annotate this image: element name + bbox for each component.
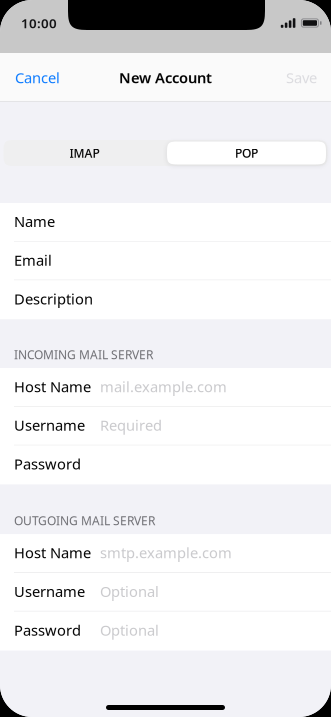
staticText: New Account [119,68,212,87]
staticText: Password [14,620,81,640]
button[interactable]: Password [0,612,331,650]
staticText: OUTGOING MAIL SERVER [14,513,155,529]
button[interactable]: Host Name [0,368,331,407]
staticText: smtp.example.com [100,543,232,562]
staticText: Description [14,289,93,308]
staticText: Host Name [14,377,91,396]
staticText: IMAP [69,145,99,161]
button[interactable]: Username [0,407,331,445]
button[interactable]: Host Name [0,534,331,573]
staticText: INCOMING MAIL SERVER [14,347,153,362]
button[interactable]: Cancel [0,55,72,99]
staticText: mail.example.com [100,377,227,396]
staticText: Optional [100,581,159,601]
staticText: Optional [100,620,159,640]
button[interactable]: Username [0,573,331,612]
staticText: POP [235,145,258,161]
staticText: Password [14,454,81,474]
button[interactable]: Save [274,55,331,99]
button[interactable]: POP [165,140,327,166]
button[interactable]: Description [0,280,331,319]
staticText: Username [14,415,85,435]
button[interactable]: Password [0,445,331,484]
staticText: 10:00 [21,14,57,32]
staticText: Host Name [14,543,91,562]
button[interactable]: IMAP [3,140,165,166]
staticText: Name [14,212,55,231]
button[interactable]: Name [0,203,331,242]
staticText: Username [14,581,85,601]
staticText: Cancel [15,68,60,87]
staticText: Required [100,415,162,435]
staticText: Save [286,68,317,87]
button[interactable]: Email [0,242,331,280]
staticText: Email [14,250,52,270]
